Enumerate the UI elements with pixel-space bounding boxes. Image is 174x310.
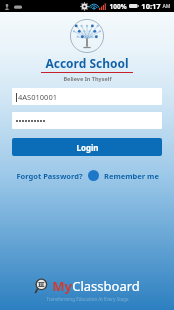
button[interactable]: Login [12,138,162,156]
staticText: Remember me [104,171,159,181]
button[interactable]: Remember me toggle [88,170,99,181]
staticText: Forgot Password? [16,171,83,181]
staticText: 100% [109,2,127,11]
button[interactable]: Username field [12,88,162,105]
staticText: 4AS010001 [18,92,57,102]
staticText: Believe In Thyself [63,75,112,82]
staticText: AM [162,3,171,10]
staticText: 10:17 [141,1,161,11]
button[interactable]: Forgot Password? [16,171,83,181]
button[interactable]: Password field [12,112,162,129]
staticText: Transforming Education At Every Stage [46,296,129,302]
button[interactable]: Remember me [104,171,159,181]
staticText: Accord School [45,55,129,71]
staticText: My [52,277,72,295]
staticText: Classboard [72,277,140,295]
staticText: Login [76,142,99,153]
